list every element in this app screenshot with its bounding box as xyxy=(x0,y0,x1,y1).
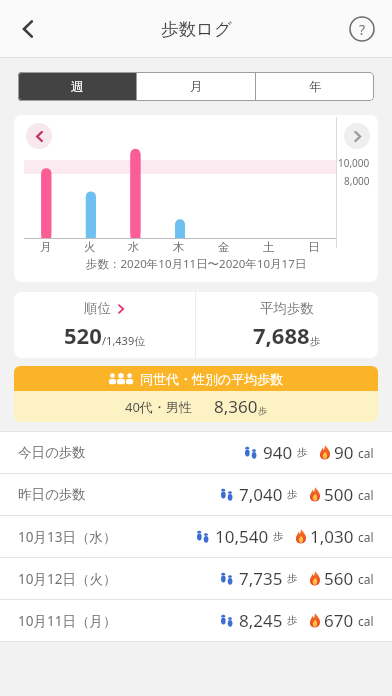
button[interactable]: Help xyxy=(338,5,386,53)
button[interactable]: 順位 xyxy=(14,292,195,358)
staticText: 10月12日（火） xyxy=(18,570,117,588)
staticText: 木 xyxy=(173,240,185,254)
staticText: 今日の歩数 xyxy=(18,444,86,461)
staticText: 520 xyxy=(64,320,102,350)
staticText: 10月13日（水） xyxy=(18,528,117,546)
staticText: 順位 xyxy=(84,300,111,317)
staticText: /1,439位 xyxy=(102,333,146,348)
staticText: 90 xyxy=(334,441,354,464)
staticText: 年 xyxy=(309,79,322,95)
staticText: 昨日の歩数 xyxy=(18,486,86,503)
button[interactable]: Back xyxy=(4,5,52,53)
staticText: 歩 xyxy=(297,446,308,459)
staticText: ? xyxy=(359,20,366,39)
staticText: 8,245 xyxy=(239,609,283,632)
staticText: 土 xyxy=(263,240,275,254)
staticText: 火 xyxy=(84,240,96,254)
staticText: 歩数：2020年10月11日〜2020年10月17日 xyxy=(86,256,307,272)
staticText: 水 xyxy=(128,240,140,254)
staticText: 7,735 xyxy=(239,567,283,590)
staticText: 月 xyxy=(190,79,203,95)
staticText: 平均歩数 xyxy=(260,300,314,317)
staticText: 週 xyxy=(71,79,84,95)
staticText: 歩 xyxy=(258,405,268,417)
staticText: 歩数ログ xyxy=(161,18,232,40)
button[interactable]: 10月11日（月） xyxy=(0,600,392,641)
staticText: cal xyxy=(358,613,374,629)
staticText: 40代・男性 xyxy=(125,398,192,416)
staticText: 940 xyxy=(263,441,293,464)
staticText: 560 xyxy=(324,567,354,590)
staticText: 歩 xyxy=(310,335,321,348)
staticText: cal xyxy=(358,445,374,461)
staticText: 7,040 xyxy=(239,483,283,506)
staticText: 歩 xyxy=(273,530,284,543)
staticText: 670 xyxy=(324,609,354,632)
staticText: 8,000 xyxy=(344,174,370,188)
staticText: 500 xyxy=(324,483,354,506)
staticText: 歩 xyxy=(287,572,298,585)
staticText: 同世代・性別の平均歩数 xyxy=(140,371,284,387)
staticText: 日 xyxy=(308,240,320,254)
button[interactable]: Next week xyxy=(344,123,370,149)
button[interactable]: 月 xyxy=(137,72,255,101)
button[interactable]: 週 xyxy=(18,72,136,101)
staticText: 歩 xyxy=(287,614,298,627)
staticText: 7,688 xyxy=(253,320,310,350)
staticText: 10,000 xyxy=(338,156,370,170)
button[interactable]: 昨日の歩数 xyxy=(0,474,392,515)
staticText: 金 xyxy=(218,240,230,254)
staticText: 歩 xyxy=(287,488,298,501)
staticText: 8,360 xyxy=(214,395,258,418)
button[interactable]: 10月12日（火） xyxy=(0,558,392,599)
button[interactable]: Previous week xyxy=(26,123,52,149)
staticText: 10月11日（月） xyxy=(18,612,117,630)
staticText: cal xyxy=(358,529,374,545)
button[interactable]: 年 xyxy=(256,72,374,101)
staticText: 月 xyxy=(40,240,52,254)
staticText: cal xyxy=(358,571,374,587)
button[interactable]: 今日の歩数 xyxy=(0,432,392,473)
staticText: 1,030 xyxy=(310,525,354,548)
button[interactable]: 10月13日（水） xyxy=(0,516,392,557)
staticText: 10,540 xyxy=(215,525,269,548)
staticText: cal xyxy=(358,487,374,503)
